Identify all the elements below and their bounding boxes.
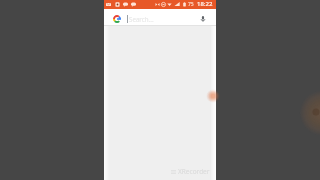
button[interactable]: Google	[104, 9, 216, 26]
staticText: 18:22	[197, 0, 213, 8]
staticText: 75	[188, 1, 194, 8]
staticText: Search...	[129, 15, 154, 23]
other: Google	[113, 15, 121, 23]
staticText: XRecorder	[178, 167, 210, 176]
other: Voice search	[199, 15, 207, 23]
